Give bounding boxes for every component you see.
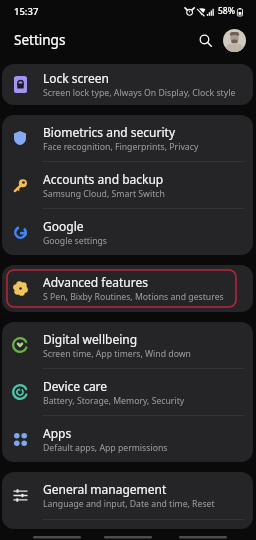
- staticText: Default apps, App permissions: [43, 442, 168, 454]
- button[interactable]: Account: [223, 29, 246, 52]
- staticText: Apps: [43, 425, 72, 441]
- staticText: Screen lock type, Always On Display, Clo…: [43, 87, 236, 99]
- button[interactable]: Advanced features: [2, 265, 253, 312]
- staticText: Face recognition, Fingerprints, Privacy: [43, 141, 199, 153]
- button[interactable]: Search: [193, 28, 217, 52]
- staticText: Google: [43, 218, 84, 234]
- button[interactable]: Apps: [2, 416, 253, 462]
- button[interactable]: General management: [2, 472, 253, 519]
- staticText: Device care: [43, 378, 108, 394]
- button[interactable]: Digital wellbeing: [2, 322, 253, 368]
- staticText: Accounts and backup: [43, 171, 164, 187]
- button[interactable]: Lock screen: [2, 64, 253, 105]
- staticText: 15:37: [14, 5, 39, 18]
- button[interactable]: Accounts and backup: [2, 162, 253, 208]
- staticText: Language and input, Date and time, Reset: [43, 498, 215, 510]
- button[interactable]: Device care: [2, 369, 253, 415]
- staticText: Samsung Cloud, Smart Switch: [43, 188, 165, 200]
- staticText: Screen time, App timers, Wind down: [43, 348, 191, 360]
- staticText: General management: [43, 481, 167, 497]
- staticText: Advanced features: [43, 274, 148, 290]
- staticText: Settings: [14, 31, 66, 49]
- staticText: S Pen, Bixby Routines, Motions and gestu…: [43, 291, 224, 303]
- staticText: Lock screen: [43, 70, 110, 86]
- button[interactable]: Biometrics and security: [2, 115, 253, 161]
- staticText: Battery, Storage, Memory, Security: [43, 395, 185, 407]
- button[interactable]: Google: [2, 209, 253, 255]
- staticText: Digital wellbeing: [43, 331, 138, 347]
- staticText: Google settings: [43, 235, 108, 247]
- staticText: Biometrics and security: [43, 124, 176, 140]
- staticText: 58%: [218, 5, 235, 17]
